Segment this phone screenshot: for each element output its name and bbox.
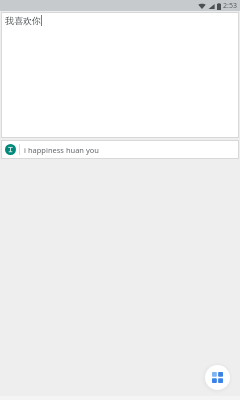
button[interactable]: Translate: [1, 140, 239, 159]
button[interactable]: Switch keyboard: [205, 365, 230, 390]
other: Translate: [5, 144, 16, 155]
staticText: 2:53: [223, 1, 237, 11]
button[interactable]: 我喜欢你: [1, 12, 239, 138]
staticText: i happiness huan you: [24, 145, 99, 155]
staticText: 我喜欢你: [5, 15, 41, 26]
